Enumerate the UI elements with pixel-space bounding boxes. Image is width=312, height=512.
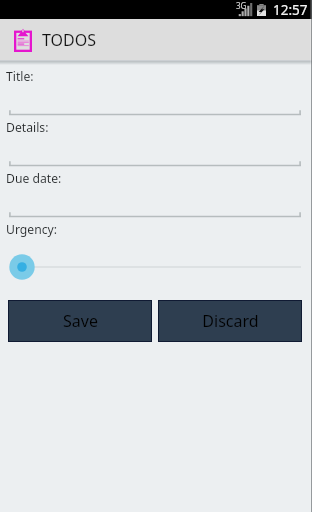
staticText: Due date: <box>6 170 62 187</box>
staticText: 3G <box>236 0 247 11</box>
button[interactable]: Save <box>9 301 151 341</box>
staticText: Details: <box>6 119 49 136</box>
staticText: Urgency: <box>6 221 58 238</box>
staticText: 12:57 <box>273 1 308 19</box>
staticText: Save <box>63 310 98 332</box>
button[interactable]: Urgency slider <box>0 253 312 281</box>
staticText: Title: <box>6 68 34 85</box>
other: Todos <box>14 28 32 52</box>
staticText: Discard <box>202 310 259 332</box>
button[interactable]: Discard <box>159 301 301 341</box>
staticText: TODOS <box>42 29 97 51</box>
